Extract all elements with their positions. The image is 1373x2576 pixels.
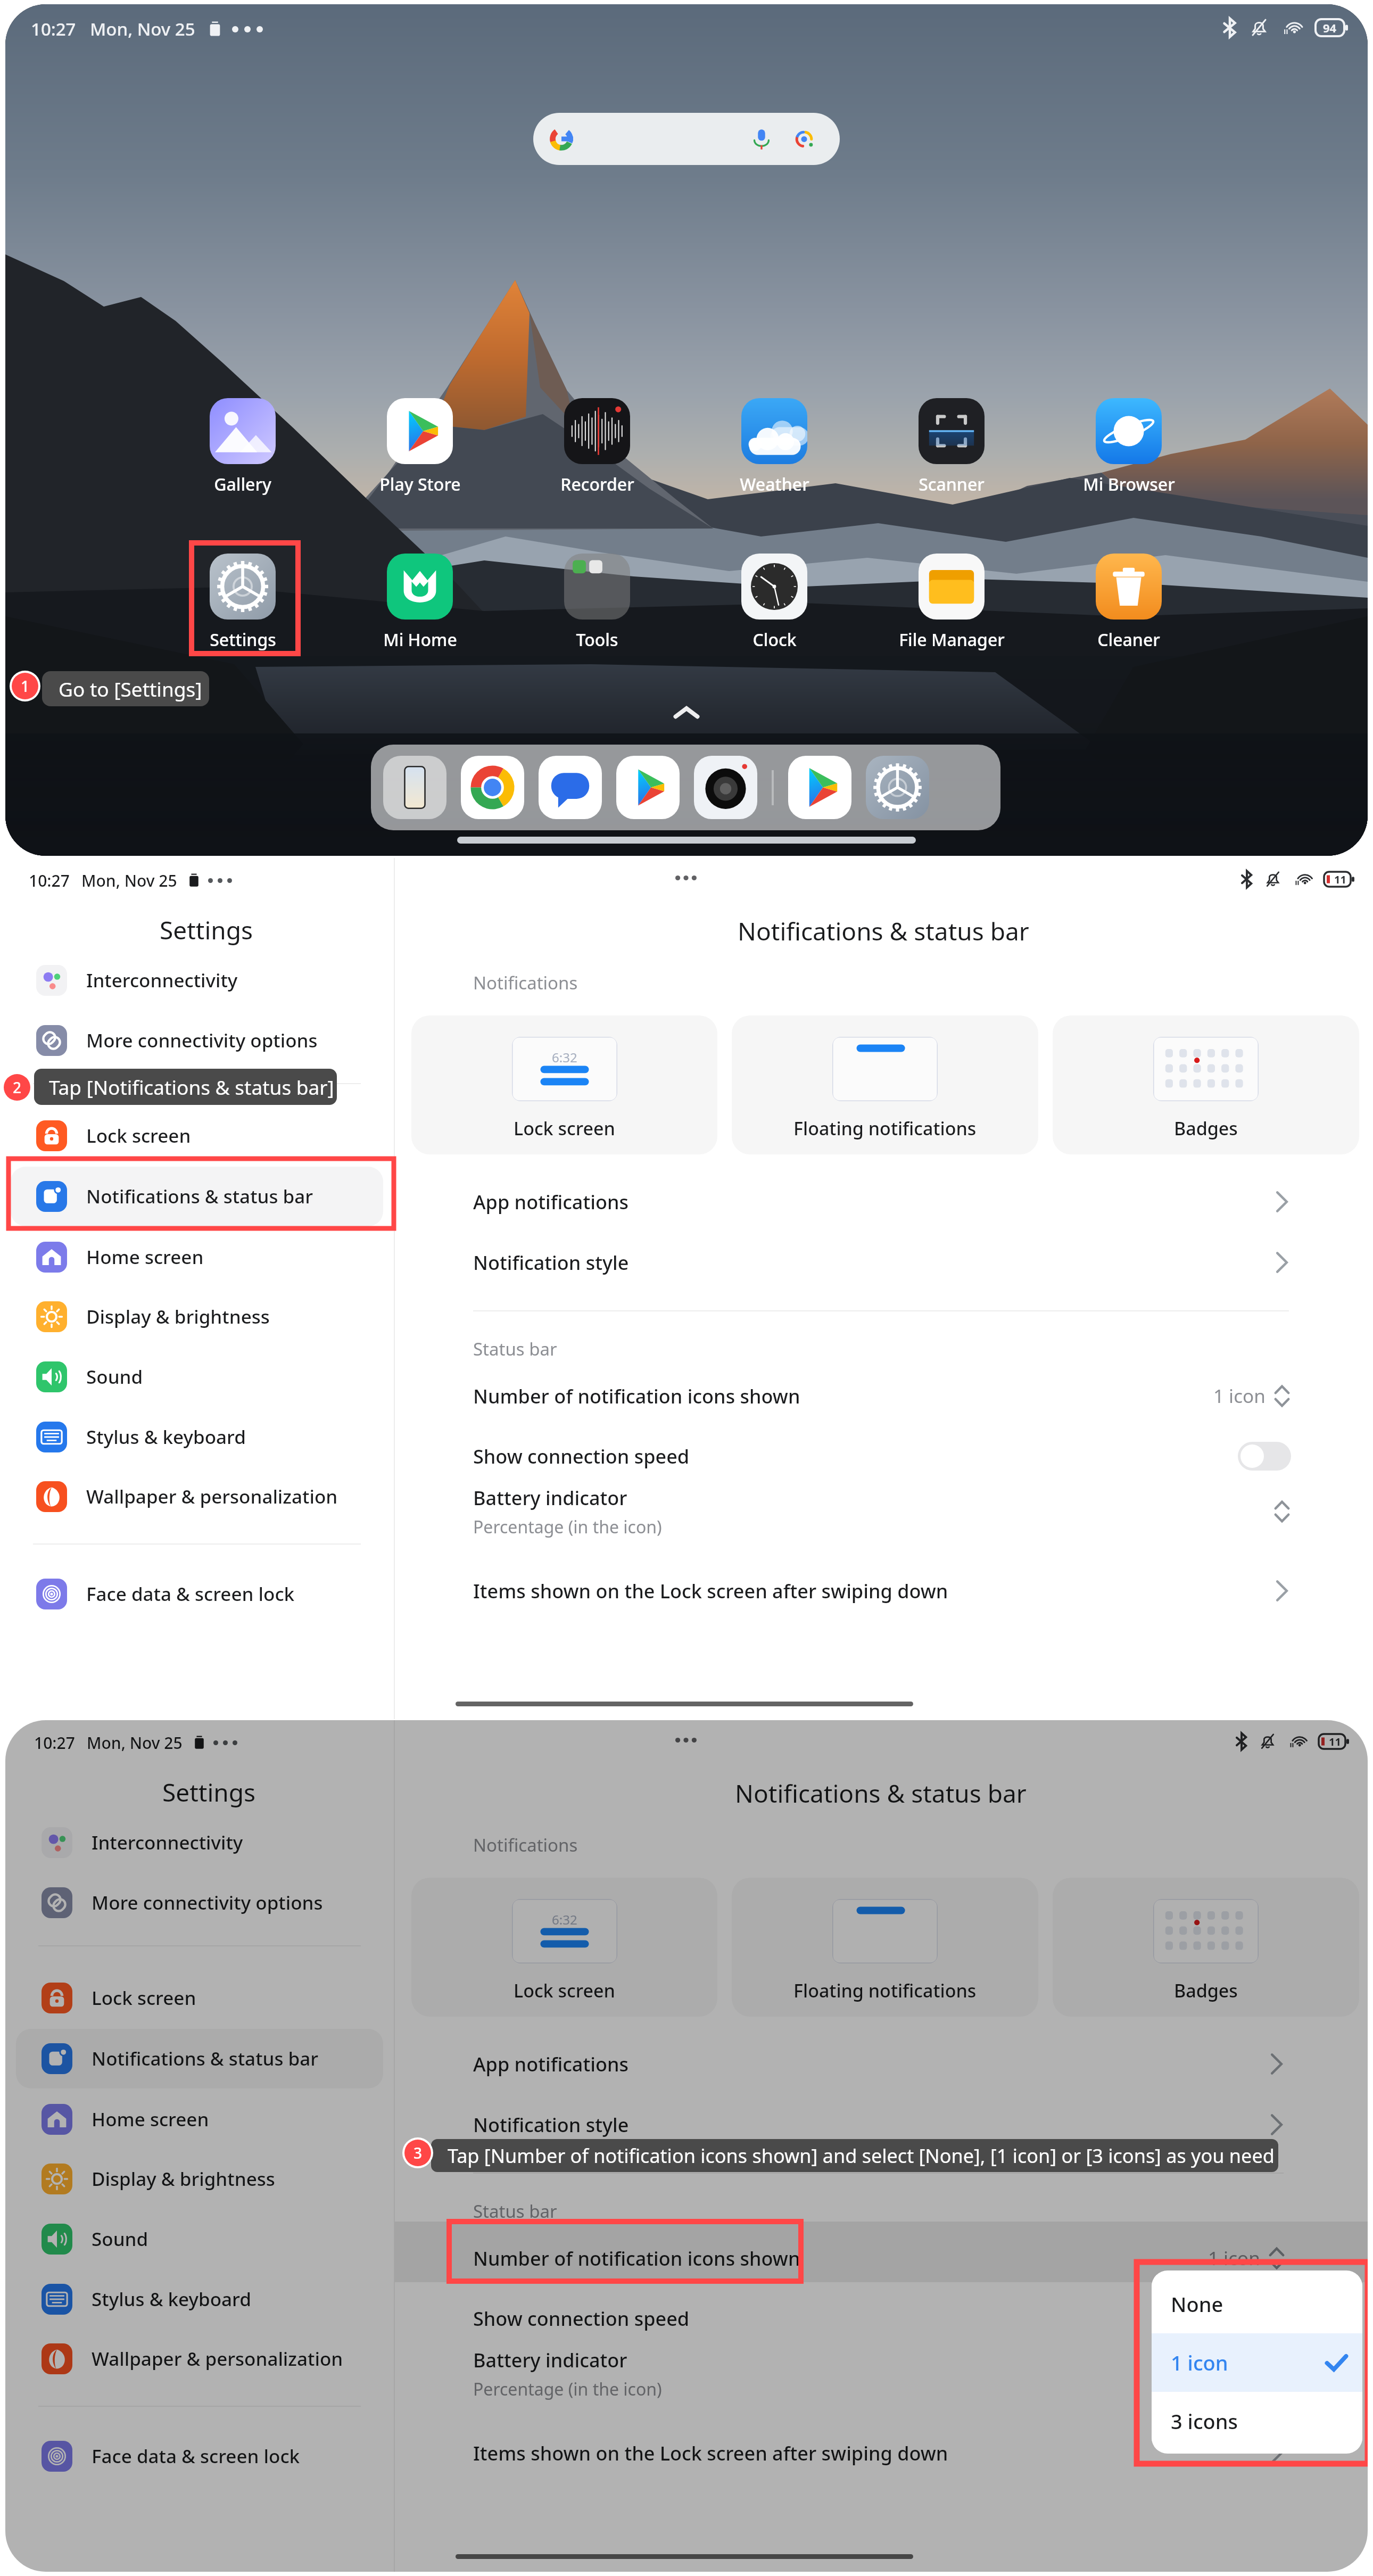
button[interactable]: Battery indicator bbox=[473, 1482, 1291, 1541]
button[interactable]: More connectivity options bbox=[16, 1873, 383, 1933]
button[interactable]: Toggle Show connection speed bbox=[1238, 1442, 1291, 1471]
staticText: Mi Home bbox=[383, 628, 457, 651]
button[interactable]: None bbox=[1152, 2275, 1362, 2333]
staticText: Settings bbox=[210, 628, 276, 651]
staticText: App notifications bbox=[473, 1189, 629, 1215]
button[interactable]: Gallery bbox=[180, 398, 305, 496]
button[interactable]: Mi Home bbox=[357, 554, 483, 651]
button[interactable]: Notification style bbox=[473, 2095, 1286, 2154]
button[interactable]: Stylus & keyboard bbox=[16, 2269, 383, 2329]
button[interactable]: Display & brightness bbox=[11, 1287, 383, 1347]
button[interactable]: Settings bbox=[866, 756, 929, 819]
button[interactable]: Sound bbox=[11, 1347, 383, 1407]
button[interactable]: Sound bbox=[16, 2209, 383, 2269]
staticText: 1 icon bbox=[1213, 1383, 1266, 1409]
button[interactable]: Scanner bbox=[889, 398, 1014, 496]
button[interactable]: Notifications & status bar bbox=[11, 1167, 383, 1226]
button[interactable]: Face data & screen lock bbox=[11, 1564, 383, 1624]
button[interactable]: Notifications & status bar bbox=[16, 2029, 383, 2088]
button[interactable]: Floating notifications bbox=[732, 1878, 1038, 2017]
button[interactable]: Lock screen bbox=[11, 1106, 383, 1166]
button[interactable]: Settings bbox=[180, 554, 305, 651]
staticText: 2 bbox=[13, 1077, 22, 1097]
staticText: 10:27 bbox=[31, 17, 76, 41]
button[interactable]: App notifications bbox=[473, 2034, 1286, 2094]
button[interactable]: Number of notification icons shown bbox=[473, 2228, 1286, 2288]
staticText: Display & brightness bbox=[86, 1304, 270, 1330]
button[interactable]: Wallpaper & personalization bbox=[16, 2329, 383, 2389]
staticText: Notifications bbox=[473, 971, 578, 995]
staticText: Battery indicator bbox=[473, 1485, 627, 1511]
button[interactable]: Interconnectivity bbox=[16, 1813, 383, 1872]
staticText: 94 bbox=[1323, 20, 1337, 36]
button[interactable]: Tools bbox=[534, 554, 660, 651]
button[interactable]: Mi Browser bbox=[1066, 398, 1192, 496]
button[interactable]: File Manager bbox=[889, 554, 1014, 651]
button[interactable]: 1 icon bbox=[1152, 2333, 1362, 2392]
button[interactable]: Weather bbox=[712, 398, 837, 496]
staticText: Face data & screen lock bbox=[86, 1581, 295, 1607]
button[interactable]: 6:32 bbox=[411, 1015, 717, 1154]
staticText: Clock bbox=[752, 628, 797, 651]
staticText: 11 bbox=[1334, 872, 1346, 887]
button[interactable]: Number of notification icons shown bbox=[473, 1366, 1291, 1426]
button[interactable]: Play Store bbox=[788, 756, 851, 819]
staticText: Face data & screen lock bbox=[92, 2443, 300, 2469]
button[interactable]: Show connection speed bbox=[473, 2289, 1286, 2348]
button[interactable]: Badges bbox=[1053, 1015, 1359, 1154]
staticText: App notifications bbox=[473, 2051, 629, 2077]
button[interactable]: 6:32 bbox=[411, 1878, 717, 2017]
staticText: Tools bbox=[576, 628, 618, 651]
button[interactable]: Items shown on the Lock screen after swi… bbox=[473, 2423, 1286, 2483]
staticText: Mon, Nov 25 bbox=[81, 870, 177, 891]
staticText: Stylus & keyboard bbox=[86, 1424, 246, 1450]
button[interactable]: App notifications bbox=[473, 1172, 1291, 1232]
button[interactable]: 3 icons bbox=[1152, 2392, 1362, 2450]
button[interactable]: Messages bbox=[539, 756, 602, 819]
staticText: Badges bbox=[1174, 1978, 1238, 2003]
button[interactable]: More connectivity options bbox=[11, 1011, 383, 1070]
staticText: Badges bbox=[1174, 1116, 1238, 1141]
staticText: Tap [Notifications & status bar] bbox=[49, 1074, 334, 1100]
button[interactable]: Wallpaper & personalization bbox=[11, 1467, 383, 1526]
staticText: Settings bbox=[160, 913, 253, 947]
button[interactable]: Home screen bbox=[11, 1227, 383, 1287]
staticText: Notifications & status bar bbox=[738, 914, 1029, 948]
button[interactable]: Gallery2 bbox=[616, 756, 680, 819]
staticText: Wallpaper & personalization bbox=[86, 1484, 338, 1509]
button[interactable]: Google search bbox=[533, 113, 840, 165]
button[interactable]: Cleaner bbox=[1066, 554, 1192, 651]
staticText: Notification style bbox=[473, 2112, 629, 2138]
button[interactable]: Floating notifications bbox=[732, 1015, 1038, 1154]
staticText: Show connection speed bbox=[473, 2306, 690, 2332]
staticText: Wallpaper & personalization bbox=[92, 2346, 343, 2372]
button[interactable]: Recorder bbox=[534, 398, 660, 496]
staticText: Notifications bbox=[473, 1833, 578, 1857]
button[interactable]: Interconnectivity bbox=[11, 951, 383, 1010]
button[interactable]: Lock screen bbox=[16, 1968, 383, 2028]
staticText: 10:27 bbox=[29, 870, 70, 891]
staticText: Lock screen bbox=[514, 1978, 615, 2003]
button[interactable]: Stylus & keyboard bbox=[11, 1407, 383, 1467]
button[interactable]: Notification style bbox=[473, 1233, 1291, 1292]
button[interactable]: Items shown on the Lock screen after swi… bbox=[473, 1561, 1291, 1621]
button[interactable]: Camera bbox=[694, 756, 757, 819]
button[interactable]: Display & brightness bbox=[16, 2149, 383, 2209]
staticText: Notification style bbox=[473, 1250, 629, 1276]
staticText: More connectivity options bbox=[92, 1890, 323, 1916]
button[interactable]: Home screen bbox=[16, 2090, 383, 2149]
button[interactable]: Clock bbox=[712, 554, 837, 651]
button[interactable]: Chrome bbox=[461, 756, 524, 819]
staticText: Floating notifications bbox=[793, 1116, 977, 1141]
staticText: Lock screen bbox=[86, 1123, 191, 1149]
button[interactable]: Open app drawer bbox=[660, 689, 713, 742]
staticText: Status bar bbox=[473, 1337, 557, 1361]
button[interactable]: Notes bbox=[383, 756, 446, 819]
staticText: Sound bbox=[92, 2226, 148, 2252]
button[interactable]: Play Store bbox=[357, 398, 483, 496]
button[interactable]: Face data & screen lock bbox=[16, 2426, 383, 2486]
button[interactable]: Battery indicator bbox=[473, 2344, 1286, 2404]
button[interactable]: Badges bbox=[1053, 1878, 1359, 2017]
button[interactable]: Show connection speed bbox=[473, 1426, 1291, 1486]
